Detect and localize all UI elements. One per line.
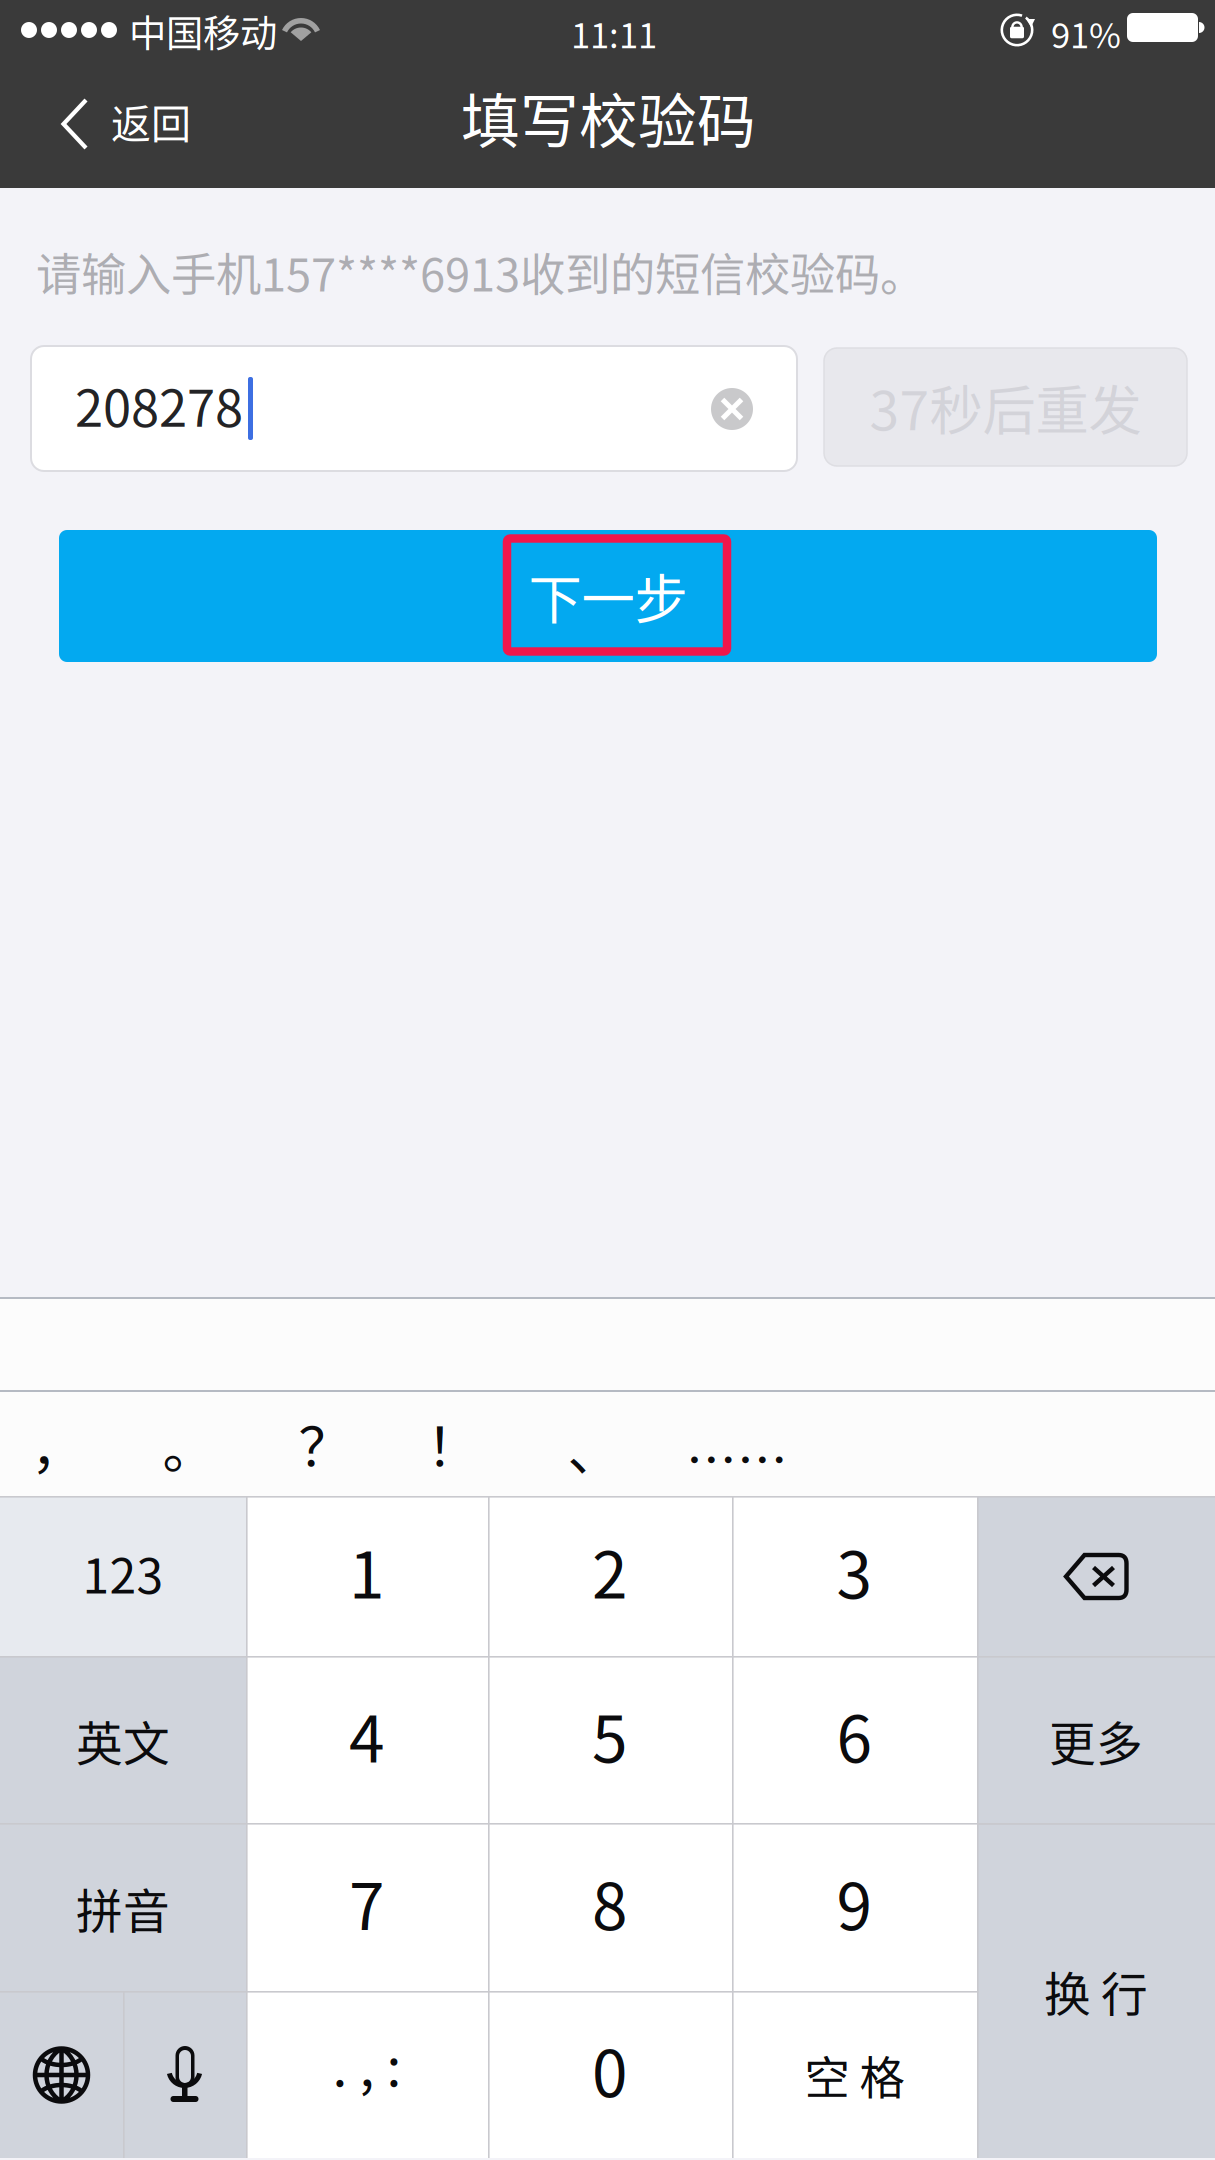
staticText: 英文 [76,1707,170,1774]
button[interactable]: 下一步 [59,530,1157,662]
staticText: 208278 [75,368,243,441]
staticText: . , : [332,2024,401,2102]
staticText: 下一步 [528,557,687,635]
button[interactable]: ， [0,1392,115,1495]
button[interactable]: 更多 [977,1657,1215,1824]
button[interactable]: 5 [488,1657,732,1824]
staticText: 请输入手机157****6913收到的短信校验码。 [36,239,925,305]
button[interactable]: 8 [488,1824,732,1992]
button[interactable]: 6 [732,1657,977,1824]
staticText: 。 [162,1407,215,1484]
staticText: ， [31,1407,84,1484]
button[interactable]: Verification code field [31,346,797,471]
staticText: 7 [349,1856,385,1948]
button[interactable]: …… [654,1392,820,1495]
staticText: 、 [567,1409,620,1486]
staticText: ？ [298,1405,351,1482]
button[interactable]: 拼音 [0,1824,246,1992]
staticText: 返回 [111,92,191,150]
staticText: 拼音 [76,1874,170,1942]
button[interactable]: 。 [115,1392,263,1495]
staticText: 11:11 [571,8,657,58]
staticText: 123 [82,1538,163,1607]
button[interactable]: 37秒后重发 [824,348,1187,466]
staticText: 填写校验码 [461,75,756,160]
staticText: ！ [426,1405,479,1482]
staticText: 9 [836,1856,872,1948]
button[interactable]: . , : [246,1992,488,2158]
staticText: 8 [592,1856,628,1948]
button[interactable]: 123 [0,1496,246,1657]
staticText: 4 [349,1688,385,1781]
button[interactable]: ？ [263,1392,387,1495]
staticText: 2 [592,1524,628,1617]
staticText: 更多 [1049,1707,1143,1774]
staticText: 0 [592,2023,628,2115]
staticText: 37秒后重发 [869,368,1141,446]
staticText: 3 [836,1524,872,1617]
button[interactable]: 0 [488,1992,732,2158]
button[interactable]: 9 [732,1824,977,1992]
button[interactable]: 换 行 [977,1824,1215,2158]
staticText: 6 [836,1688,872,1781]
button[interactable]: 7 [246,1824,488,1992]
button[interactable]: 空 格 [732,1992,977,2158]
button[interactable]: 1 [246,1496,488,1657]
staticText: 换 行 [1044,1957,1148,2025]
button[interactable]: 英文 [0,1657,246,1824]
staticText: …… [686,1421,788,1494]
button[interactable]: Dictate [123,1992,246,2158]
button[interactable]: 2 [488,1496,732,1657]
button[interactable]: ！ [387,1392,519,1495]
staticText: 1 [349,1524,385,1617]
button[interactable]: 、 [519,1392,669,1495]
staticText: 空 格 [804,2042,904,2108]
staticText: 5 [592,1688,628,1781]
button[interactable]: Clear text [688,347,776,471]
button[interactable]: 4 [246,1657,488,1824]
button[interactable]: Switch keyboard [0,1992,123,2158]
button[interactable]: 返回 [0,62,215,188]
staticText: 中国移动 [129,4,277,58]
staticText: 91% [1051,8,1121,58]
button[interactable]: Delete [977,1496,1215,1657]
button[interactable]: 3 [732,1496,977,1657]
